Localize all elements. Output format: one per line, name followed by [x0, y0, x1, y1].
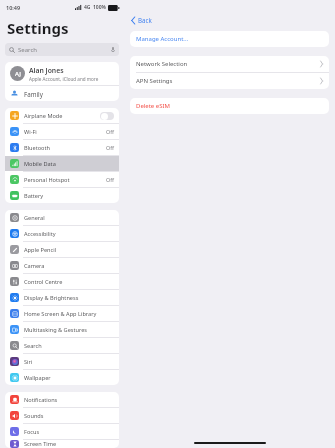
- button[interactable]: Wi-Fi: [5, 124, 119, 139]
- button[interactable]: Camera: [5, 258, 119, 273]
- button[interactable]: Apple Pencil: [5, 242, 119, 257]
- staticText: AJ: [15, 70, 21, 78]
- staticText: Search: [18, 46, 37, 54]
- staticText: Multitasking & Gestures: [24, 326, 88, 334]
- staticText: Control Centre: [24, 278, 63, 286]
- button[interactable]: Search: [5, 43, 119, 56]
- staticText: Delete eSIM: [136, 102, 170, 110]
- button[interactable]: AJ: [5, 62, 119, 85]
- staticText: Off: [106, 176, 114, 183]
- staticText: Wallpaper: [24, 374, 51, 382]
- button[interactable]: Personal Hotspot: [5, 172, 119, 187]
- button[interactable]: Battery: [5, 188, 119, 203]
- staticText: Mobile Data: [24, 160, 56, 168]
- staticText: Display & Brightness: [24, 294, 79, 302]
- staticText: Sounds: [24, 412, 44, 420]
- staticText: Home Screen & App Library: [24, 310, 97, 318]
- button[interactable]: Search: [5, 338, 119, 353]
- staticText: Notifications: [24, 396, 58, 404]
- button[interactable]: APN Settings: [130, 73, 329, 89]
- staticText: Settings: [7, 18, 69, 38]
- staticText: Bluetooth: [24, 144, 50, 152]
- staticText: Family: [24, 90, 43, 98]
- button[interactable]: Home Screen & App Library: [5, 306, 119, 321]
- button[interactable]: Focus: [5, 424, 119, 439]
- staticText: Search: [24, 342, 42, 350]
- button[interactable]: Back: [129, 14, 154, 26]
- button[interactable]: Notifications: [5, 392, 119, 407]
- button[interactable]: Airplane Mode: [5, 108, 119, 123]
- staticText: Off: [106, 144, 114, 151]
- staticText: Accessibility: [24, 230, 56, 238]
- button[interactable]: Bluetooth: [5, 140, 119, 155]
- staticText: Siri: [24, 358, 33, 366]
- staticText: 100%: [93, 4, 106, 11]
- staticText: General: [24, 214, 45, 222]
- button[interactable]: Family: [5, 86, 119, 101]
- staticText: Apple Account, iCloud and more: [29, 76, 99, 82]
- button[interactable]: Control Centre: [5, 274, 119, 289]
- staticText: Battery: [24, 192, 44, 200]
- button[interactable]: Manage Account...: [130, 31, 329, 47]
- staticText: Alan Jones: [29, 66, 64, 75]
- button[interactable]: Multitasking & Gestures: [5, 322, 119, 337]
- button[interactable]: Siri: [5, 354, 119, 369]
- staticText: Back: [138, 16, 152, 24]
- staticText: Apple Pencil: [24, 246, 57, 254]
- button[interactable]: Network Selection: [130, 56, 329, 72]
- staticText: Camera: [24, 262, 45, 270]
- button[interactable]: Accessibility: [5, 226, 119, 241]
- staticText: Network Selection: [136, 60, 188, 68]
- button[interactable]: Wallpaper: [5, 370, 119, 385]
- staticText: Focus: [24, 428, 40, 436]
- button[interactable]: General: [5, 210, 119, 225]
- staticText: Personal Hotspot: [24, 176, 70, 184]
- button[interactable]: Delete eSIM: [130, 98, 329, 114]
- staticText: Off: [106, 128, 114, 135]
- button[interactable]: Screen Time: [5, 440, 119, 448]
- staticText: Screen Time: [24, 440, 57, 448]
- button[interactable]: Mobile Data: [5, 156, 119, 171]
- staticText: Airplane Mode: [24, 112, 63, 120]
- staticText: 10:49: [6, 4, 21, 11]
- staticText: Wi-Fi: [24, 128, 37, 136]
- staticText: Manage Account...: [136, 35, 189, 43]
- staticText: 4G: [84, 4, 91, 11]
- button[interactable]: Sounds: [5, 408, 119, 423]
- staticText: APN Settings: [136, 77, 173, 85]
- button[interactable]: Display & Brightness: [5, 290, 119, 305]
